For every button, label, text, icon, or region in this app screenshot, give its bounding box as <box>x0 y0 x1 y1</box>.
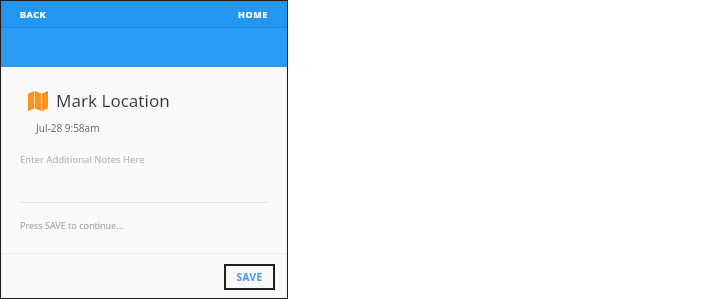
staticText: Enter Additional Notes Here <box>20 153 145 166</box>
button[interactable]: BACK <box>10 4 57 24</box>
staticText: Mark Location <box>56 89 170 112</box>
staticText: HOME <box>238 8 268 20</box>
staticText: Jul-28 9:58am <box>36 121 100 135</box>
staticText: SAVE <box>236 270 263 284</box>
button[interactable]: Enter Additional Notes Here <box>20 153 268 203</box>
button[interactable]: SAVE <box>224 264 275 290</box>
button[interactable]: HOME <box>228 4 278 24</box>
staticText: Press SAVE to continue... <box>20 219 124 231</box>
staticText: BACK <box>20 8 47 20</box>
